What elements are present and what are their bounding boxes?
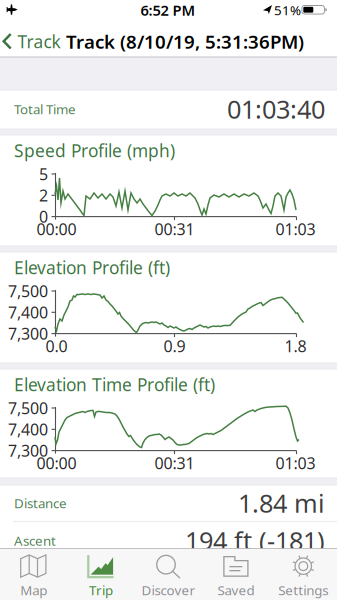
staticText: 0 [39, 206, 48, 227]
staticText: 5 [39, 163, 48, 185]
staticText: Distance [14, 494, 67, 512]
staticText: Elevation Profile (ft) [14, 256, 170, 279]
button[interactable]: Track [0, 30, 60, 53]
staticText: 51% [274, 1, 301, 19]
staticText: Settings [278, 581, 328, 599]
staticText: 01:03:40 [227, 92, 325, 126]
button[interactable]: Trip [67, 551, 135, 600]
staticText: 7,300 [8, 323, 48, 344]
staticText: 0.9 [163, 335, 185, 357]
staticText: 7,300 [8, 440, 48, 461]
staticText: 7,500 [8, 397, 48, 419]
staticText: 7,500 [8, 280, 48, 302]
staticText: Saved [217, 581, 254, 599]
staticText: 0.0 [45, 335, 67, 357]
button[interactable]: Settings [270, 551, 337, 600]
staticText: Speed Profile (mph) [14, 139, 175, 162]
staticText: 1.8 [284, 335, 306, 357]
staticText: 194 ft (-181) [185, 524, 325, 557]
staticText: Trip [89, 581, 113, 599]
staticText: Map [20, 581, 47, 599]
staticText: 00:31 [154, 218, 194, 240]
staticText: 7,400 [8, 419, 48, 440]
staticText: Track (8/10/19, 5:31:36PM) [66, 29, 304, 54]
staticText: Elevation Time Profile (ft) [14, 373, 215, 396]
button[interactable]: Discover [135, 551, 202, 600]
staticText: 2 [39, 185, 48, 206]
button[interactable]: Saved [202, 551, 270, 600]
staticText: 7,400 [8, 302, 48, 323]
staticText: 6:52 PM [140, 0, 195, 20]
staticText: 00:31 [154, 452, 194, 474]
staticText: 01:03 [275, 218, 315, 240]
button[interactable]: Map [0, 551, 67, 600]
staticText: Discover [141, 581, 195, 599]
staticText: 00:00 [36, 218, 76, 240]
staticText: Total Time [14, 100, 76, 118]
staticText: Track [17, 30, 60, 53]
staticText: Ascent [14, 532, 56, 549]
staticText: 01:03 [275, 452, 315, 474]
staticText: 00:00 [36, 452, 76, 474]
staticText: 1.84 mi [238, 486, 325, 520]
